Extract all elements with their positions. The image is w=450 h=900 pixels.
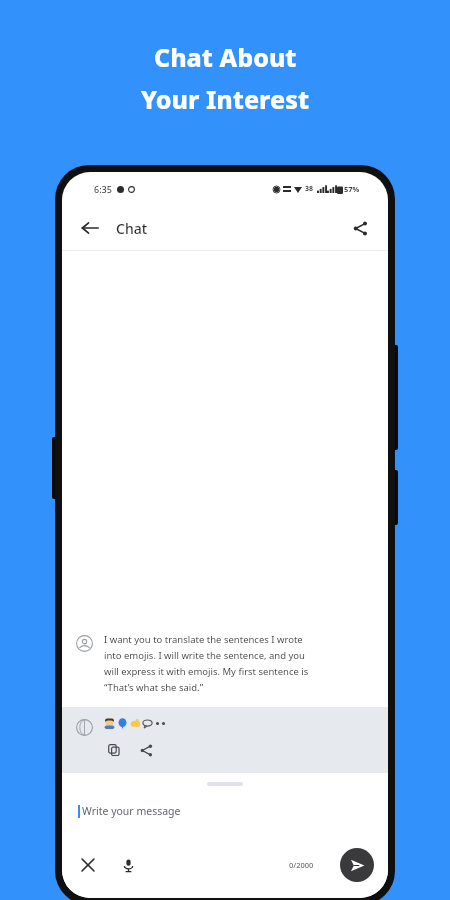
staticText: 57% [344,184,360,194]
staticText: I want you to translate the sentences I … [104,633,303,646]
staticText: Chat [116,219,148,238]
staticText: will express it with emojis. My first se… [104,665,309,678]
button[interactable]: Share message [136,740,156,760]
button[interactable]: Clear [74,851,102,879]
staticText: Write your message [82,804,181,818]
staticText: Your Interest [141,82,310,116]
staticText: 0/2000 [289,860,314,870]
button[interactable]: Copy [104,740,124,760]
button[interactable]: Write your message [62,804,388,818]
button[interactable]: Share [342,210,378,246]
button[interactable]: Back [72,210,108,246]
button[interactable]: Send [340,848,374,882]
staticText: 38 [305,184,314,194]
button[interactable]: Voice input [114,851,142,879]
staticText: 6:35 [94,183,112,195]
button[interactable]: Copy [62,707,388,773]
staticText: Chat About [154,40,297,74]
button[interactable]: I want you to translate the sentences I … [62,625,388,707]
staticText: into emojis. I will write the sentence, … [104,649,305,662]
staticText: “That’s what she said.” [104,681,204,694]
